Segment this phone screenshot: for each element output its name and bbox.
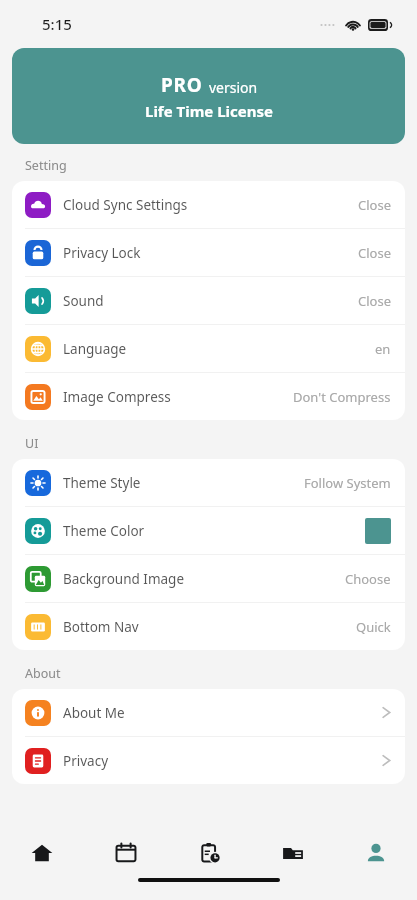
button[interactable]: Profile xyxy=(334,828,417,878)
button[interactable]: Theme Style xyxy=(12,459,405,506)
button[interactable]: Calendar xyxy=(84,828,168,878)
staticText: Privacy xyxy=(63,752,109,770)
button[interactable]: Cloud Sync Settings xyxy=(12,181,405,228)
button[interactable]: Language xyxy=(12,325,405,372)
button[interactable]: PRO xyxy=(12,48,405,144)
button[interactable]: Image Compress xyxy=(12,373,405,420)
button[interactable]: Background Image xyxy=(12,555,405,602)
button[interactable]: Theme Color xyxy=(12,507,405,554)
staticText: Follow System xyxy=(304,474,391,492)
staticText: Sound xyxy=(63,292,104,310)
staticText: Background Image xyxy=(63,570,185,588)
staticText: About Me xyxy=(63,704,125,722)
staticText: Quick xyxy=(356,618,391,636)
button[interactable]: Sound xyxy=(12,277,405,324)
staticText: version xyxy=(209,78,258,97)
staticText: Language xyxy=(63,340,127,358)
staticText: Setting xyxy=(25,157,67,174)
button[interactable]: About Me xyxy=(12,689,405,736)
button[interactable]: Files xyxy=(251,828,334,878)
staticText: Close xyxy=(358,244,391,262)
staticText: Don't Compress xyxy=(293,388,391,406)
staticText: Close xyxy=(358,292,391,310)
staticText: Theme Style xyxy=(63,474,141,492)
button[interactable]: Home xyxy=(0,828,84,878)
staticText: Cloud Sync Settings xyxy=(63,196,188,214)
staticText: Privacy Lock xyxy=(63,244,141,262)
button[interactable]: Privacy xyxy=(12,737,405,784)
staticText: Life Time License xyxy=(145,101,273,121)
staticText: Image Compress xyxy=(63,388,171,406)
button[interactable]: Bottom Nav xyxy=(12,603,405,650)
staticText: Bottom Nav xyxy=(63,618,139,636)
staticText: Theme Color xyxy=(63,522,145,540)
staticText: 5:15 xyxy=(42,14,72,34)
staticText: en xyxy=(375,340,391,358)
button[interactable]: Tasks xyxy=(168,828,251,878)
button[interactable]: Privacy Lock xyxy=(12,229,405,276)
staticText: Close xyxy=(358,196,391,214)
staticText: UI xyxy=(25,435,39,452)
staticText: PRO xyxy=(161,72,203,98)
staticText: Choose xyxy=(345,570,391,588)
staticText: About xyxy=(25,665,61,682)
